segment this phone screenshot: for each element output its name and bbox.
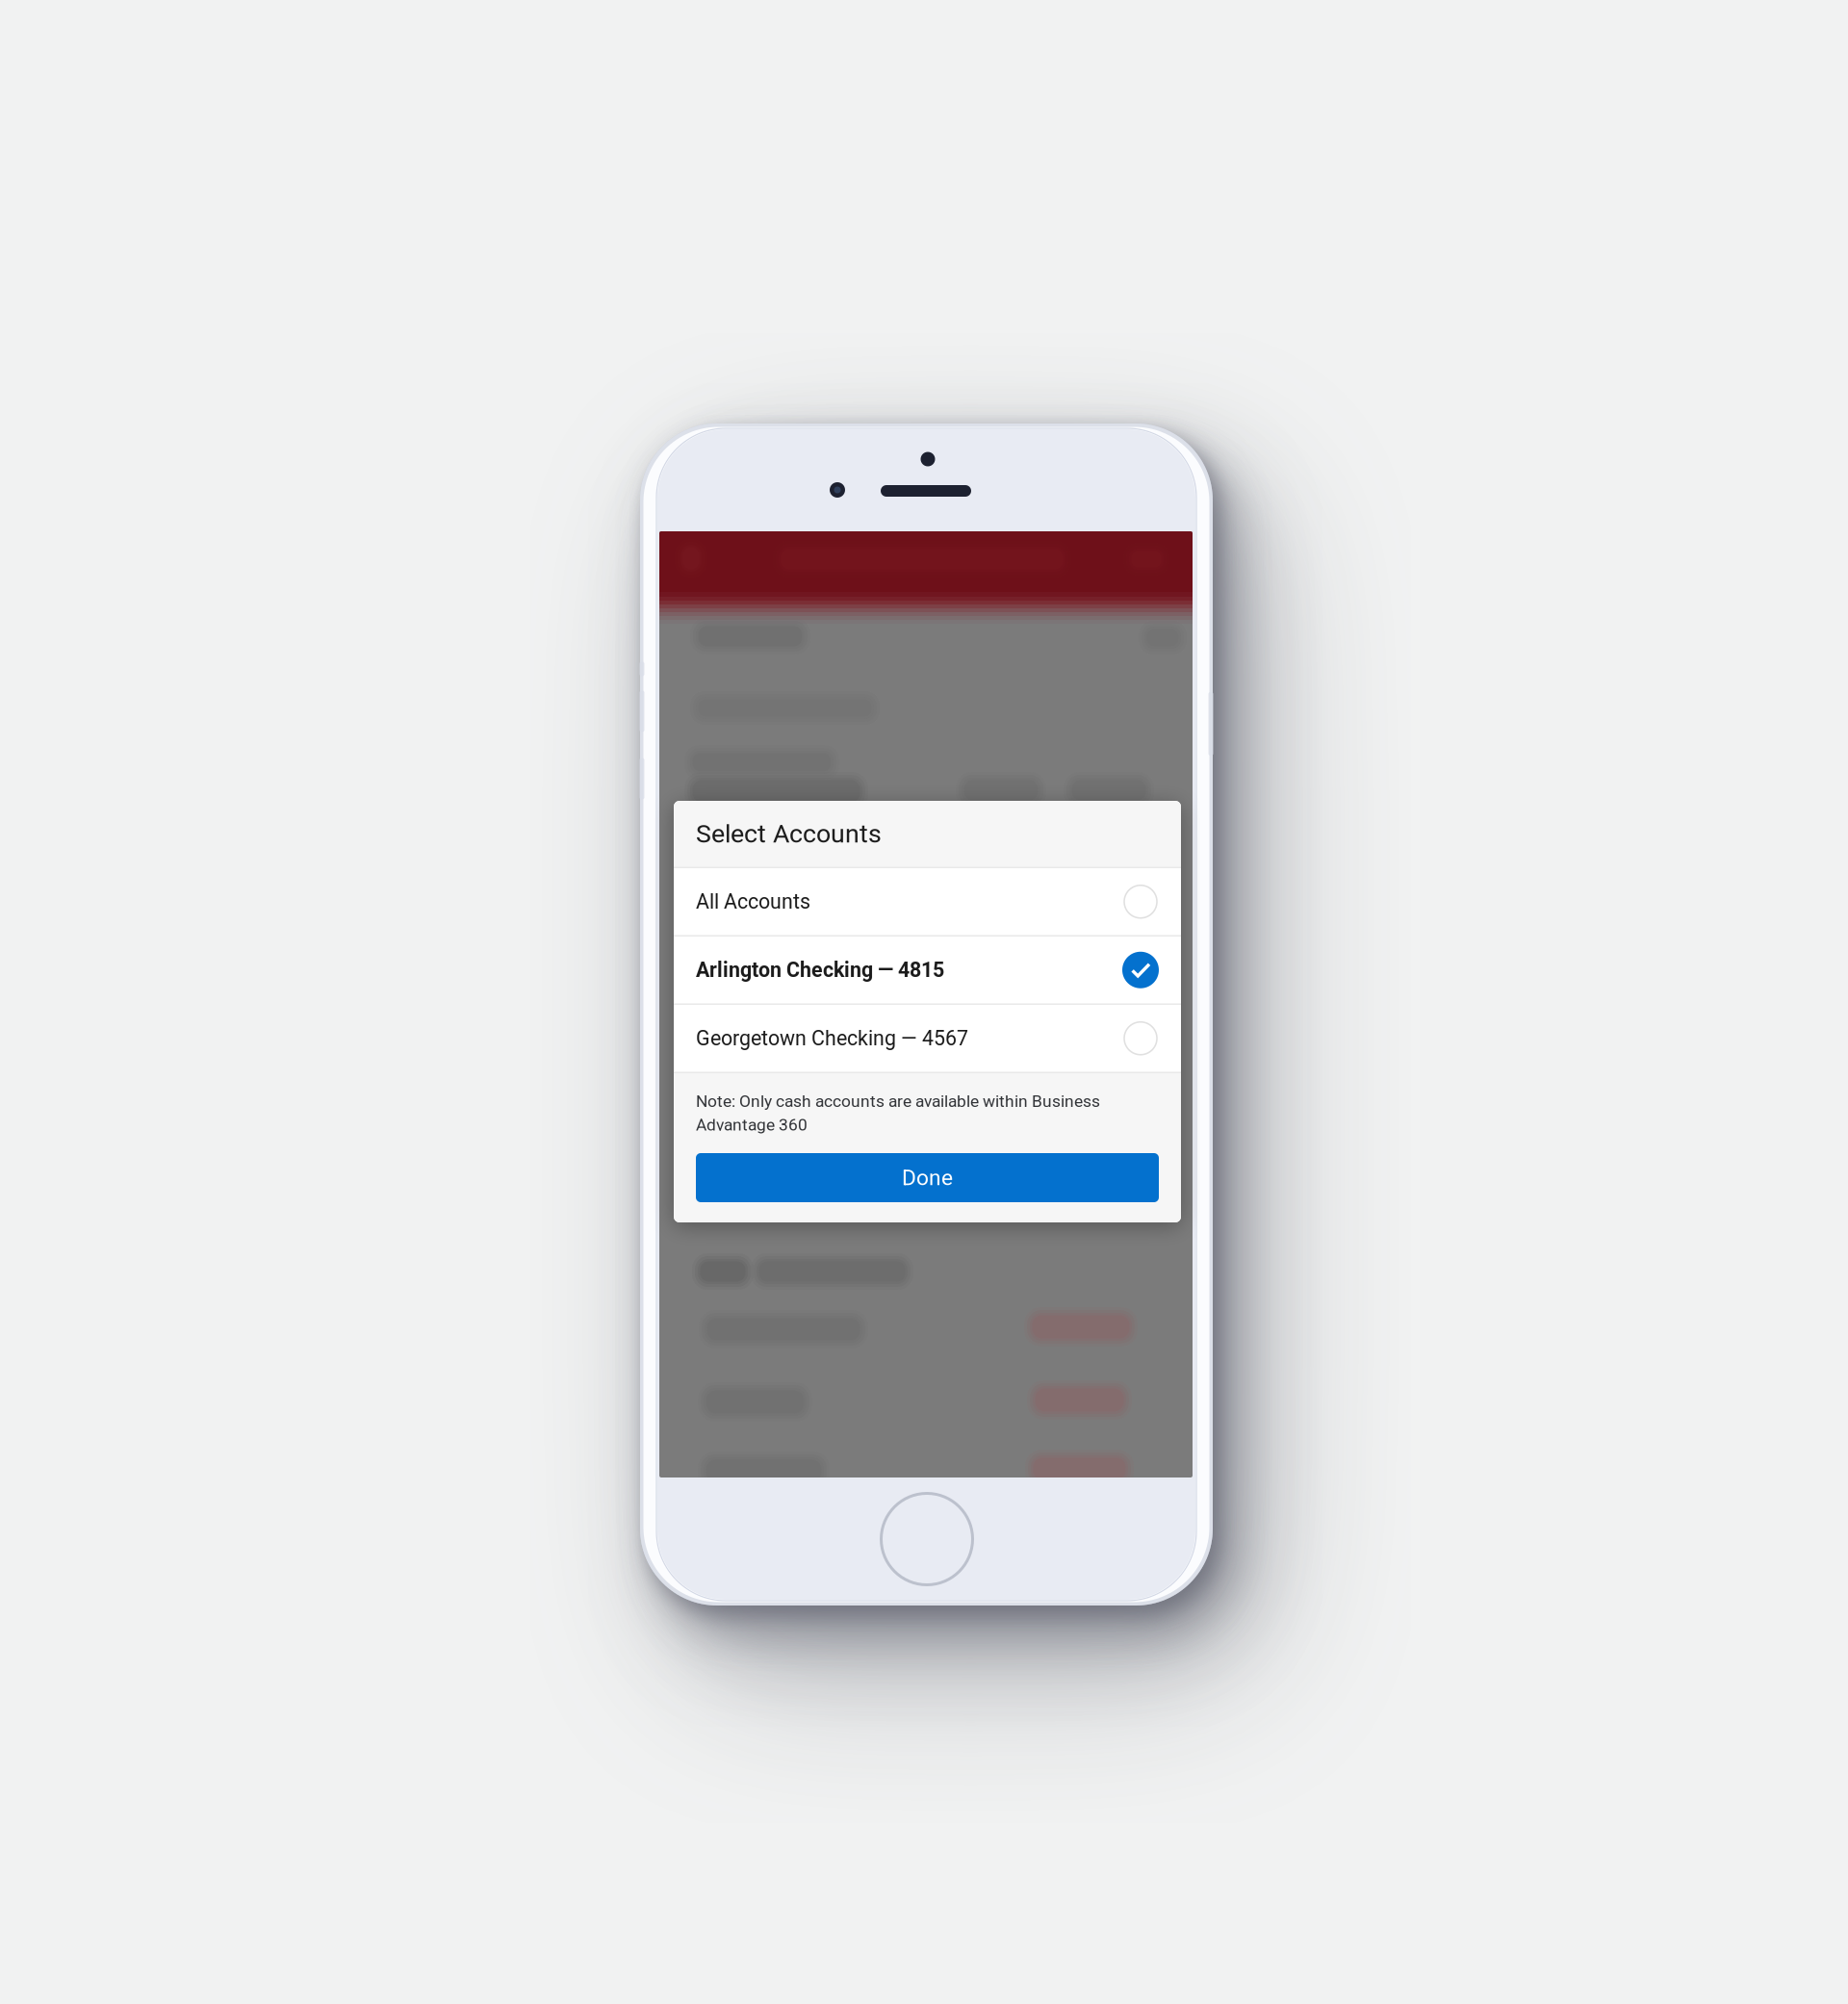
staticText: Advantage 360 [696,1115,808,1134]
button[interactable]: All Accounts [674,868,1181,935]
staticText: Note: Only cash accounts are available w… [696,1092,1100,1111]
button[interactable]: Georgetown Checking — 4567 [674,1005,1181,1072]
button[interactable]: Home [881,1493,973,1585]
button[interactable]: Arlington Checking — 4815 [674,937,1181,1003]
staticText: Arlington Checking — 4815 [696,958,944,982]
staticText: All Accounts [696,890,810,914]
staticText: Select Accounts [696,819,882,849]
staticText: Georgetown Checking — 4567 [696,1026,968,1050]
button[interactable]: Done [696,1153,1159,1202]
staticText: Done [902,1165,953,1190]
